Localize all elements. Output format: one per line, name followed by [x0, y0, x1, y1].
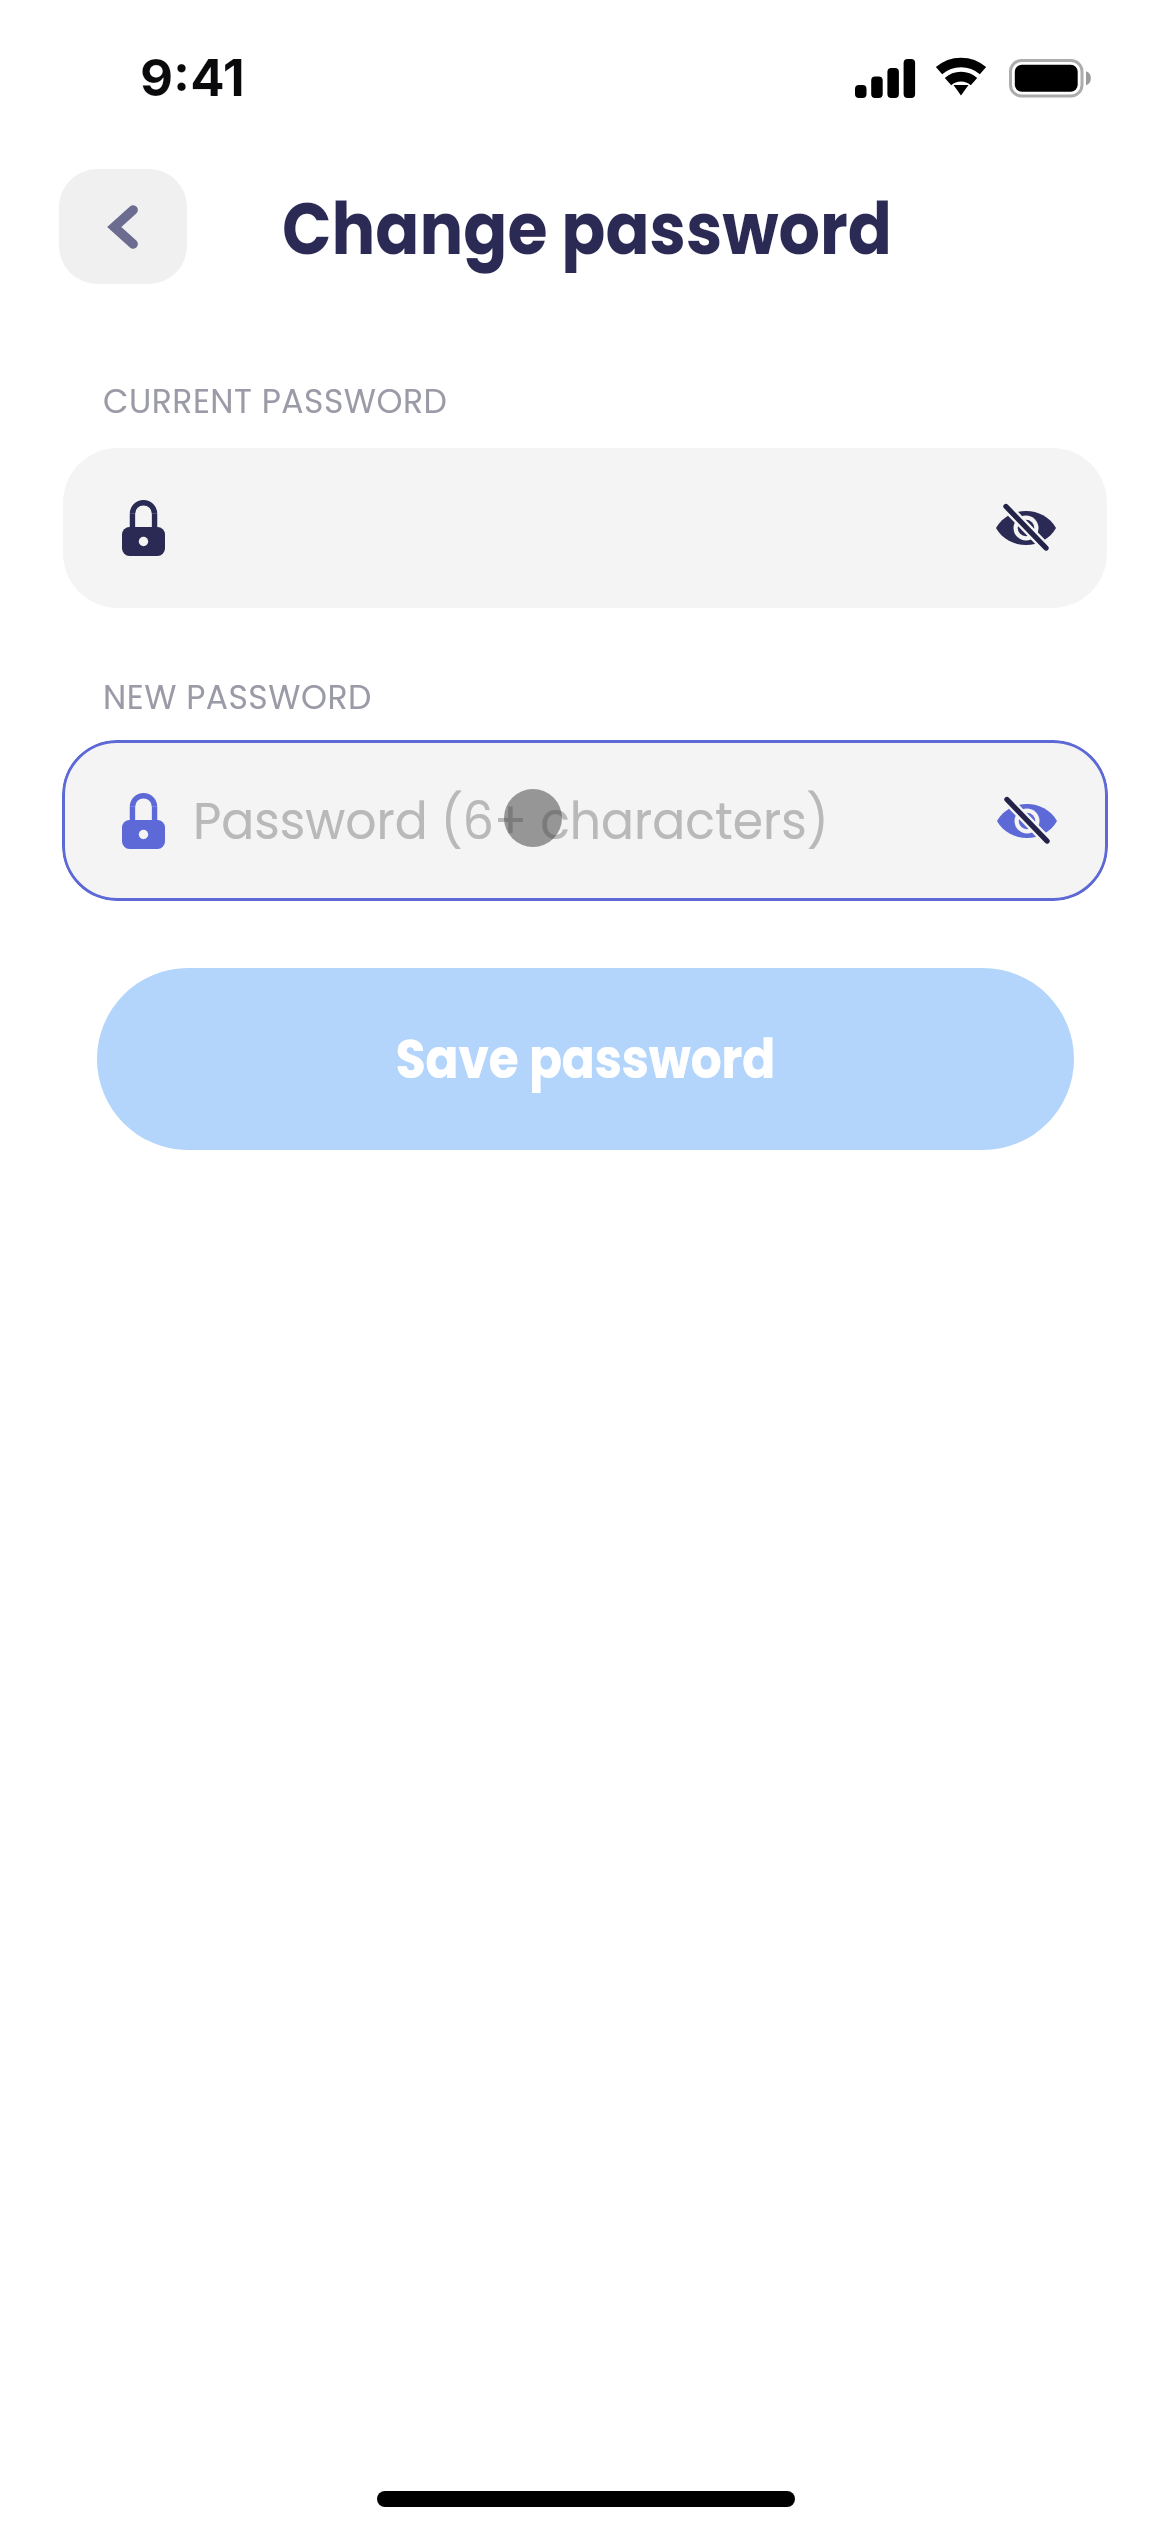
- button[interactable]: Password (6+ characters): [62, 740, 1108, 901]
- staticText: NEW PASSWORD: [103, 674, 372, 720]
- staticText: Password (6+ characters): [193, 785, 829, 856]
- staticText: Change password: [282, 178, 892, 279]
- staticText: CURRENT PASSWORD: [103, 378, 448, 424]
- staticText: Save password: [396, 1021, 775, 1097]
- button[interactable]: Show password: [63, 448, 1107, 608]
- button[interactable]: Save password: [97, 968, 1074, 1150]
- button[interactable]: Show password: [977, 771, 1077, 871]
- button[interactable]: Show password: [976, 478, 1076, 578]
- staticText: 9:41: [140, 47, 245, 109]
- button[interactable]: Back: [59, 169, 187, 284]
